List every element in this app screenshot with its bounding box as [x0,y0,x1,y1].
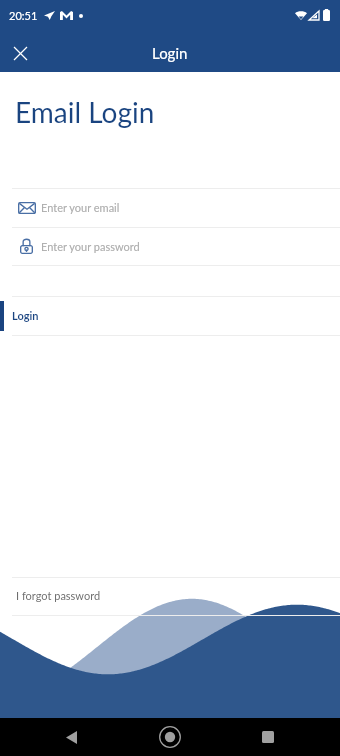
staticText: Enter your password [41,240,140,253]
button[interactable]: Close [2,35,38,71]
staticText: Email Login [15,95,155,129]
button[interactable]: Enter your password [0,227,340,265]
button[interactable]: Back [56,722,86,752]
button[interactable]: I forgot password [0,577,340,615]
staticText: Login [12,309,39,322]
button[interactable]: Login [0,296,340,335]
staticText: Enter your email [41,201,120,214]
staticText: I forgot password [16,589,101,602]
button[interactable]: Recents [253,722,283,752]
staticText: 20:51 [9,9,38,22]
button[interactable]: Enter your email [0,188,340,227]
staticText: Login [152,44,188,62]
button[interactable]: Home [155,722,185,752]
